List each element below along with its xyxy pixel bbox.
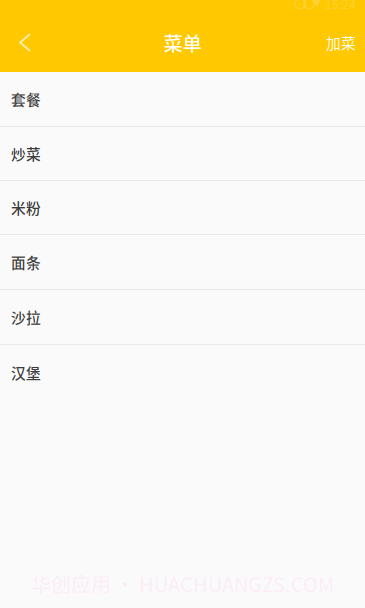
button[interactable]: Back <box>0 13 47 72</box>
staticText: 菜单 <box>163 28 201 56</box>
button[interactable]: 套餐 <box>0 72 365 127</box>
staticText: 面条 <box>11 251 41 273</box>
staticText: 炒菜 <box>11 143 41 164</box>
button[interactable]: 面条 <box>0 235 365 290</box>
button[interactable]: 沙拉 <box>0 290 365 345</box>
staticText: 华创应用 • HUACHUANGZS.COM <box>31 569 334 598</box>
button[interactable]: 米粉 <box>0 181 365 235</box>
staticText: 米粉 <box>11 197 41 218</box>
staticText: 加菜 <box>326 32 356 53</box>
staticText: 沙拉 <box>11 306 41 328</box>
staticText: 套餐 <box>11 88 41 110</box>
staticText: 汉堡 <box>11 362 41 383</box>
staticText: 15:24 <box>325 0 356 12</box>
button[interactable]: 汉堡 <box>0 345 365 400</box>
button[interactable]: 炒菜 <box>0 127 365 181</box>
button[interactable]: 加菜 <box>312 13 365 72</box>
